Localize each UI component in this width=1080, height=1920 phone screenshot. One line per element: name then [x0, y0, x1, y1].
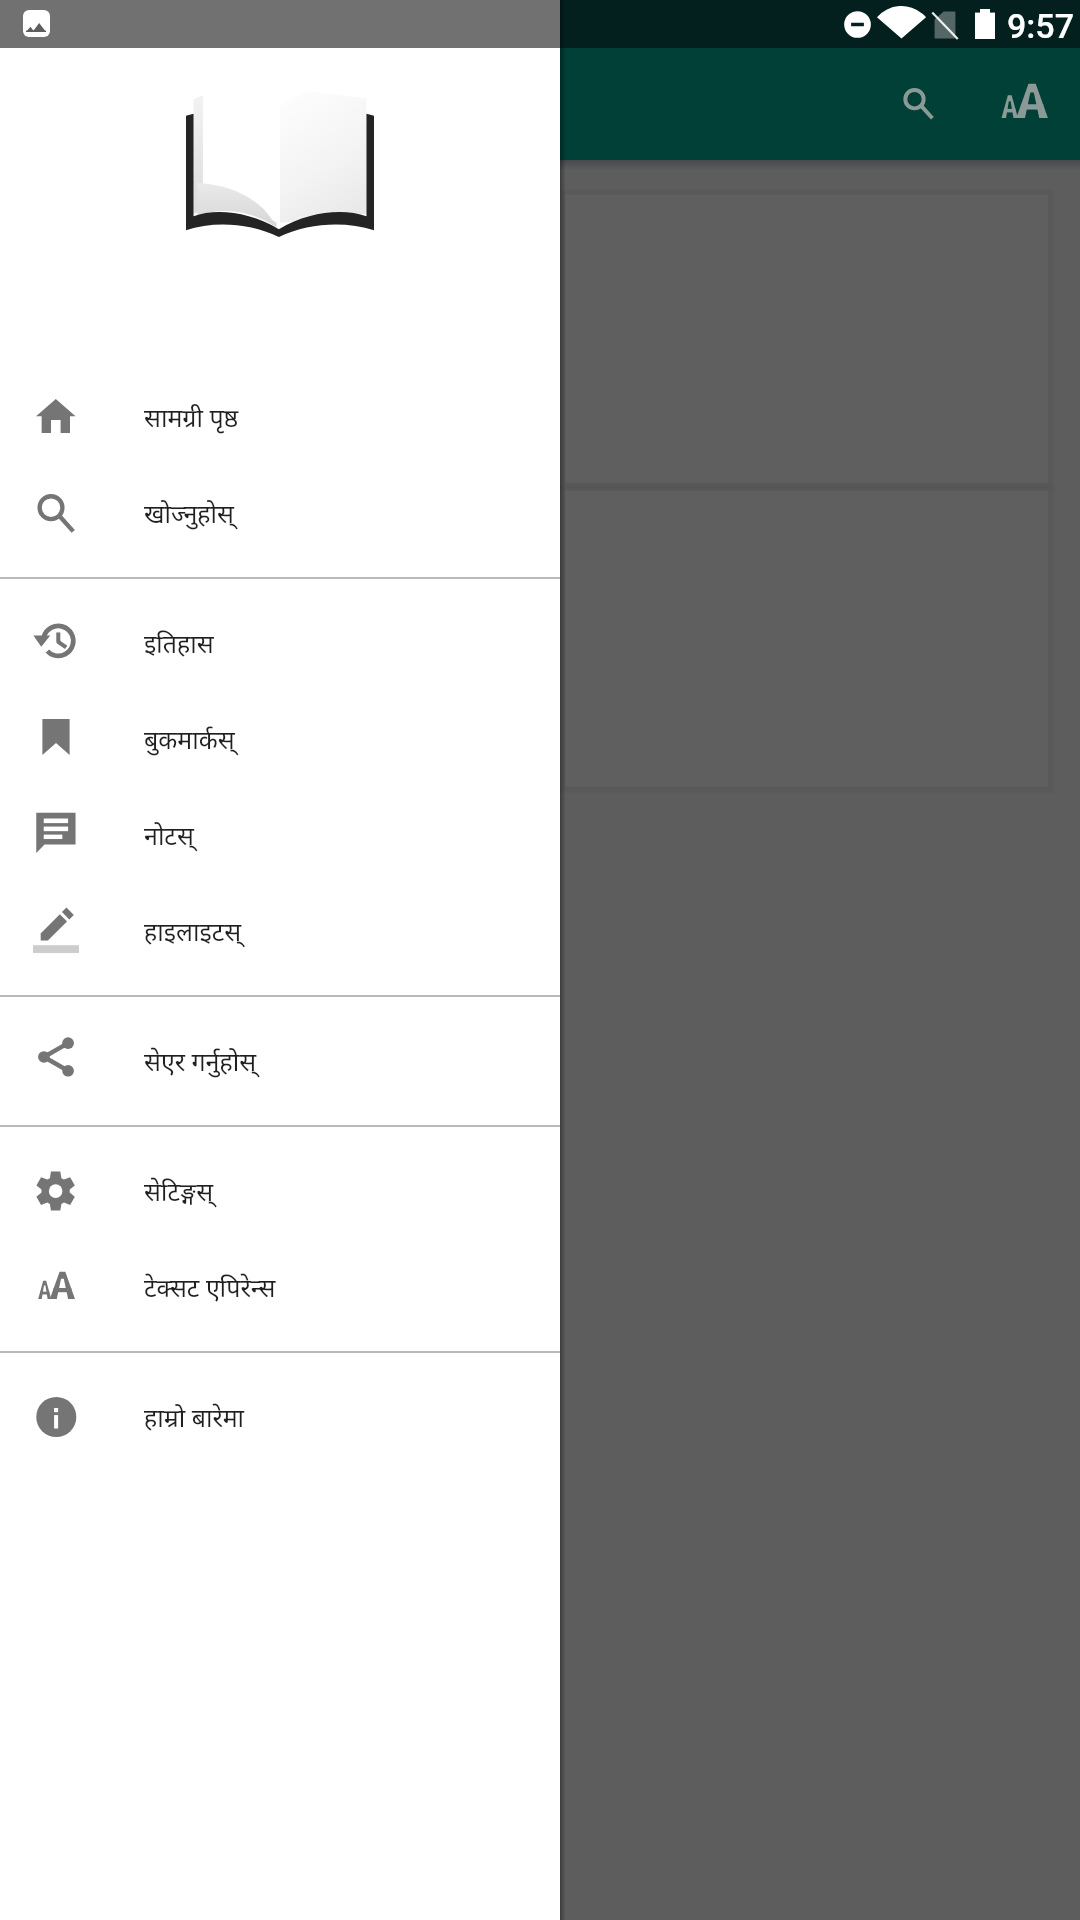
- button[interactable]: टेक्सट एपिरेन्स: [0, 1239, 560, 1335]
- button[interactable]: इतिहास: [0, 595, 560, 691]
- staticText: 9:57: [1007, 6, 1074, 46]
- button[interactable]: खोज्नुहोस्: [0, 465, 560, 561]
- staticText: टेक्सट एपिरेन्स: [144, 1270, 276, 1304]
- staticText: बुकमार्कस्: [144, 722, 235, 756]
- button[interactable]: सेटिङ्गस्: [0, 1143, 560, 1239]
- staticText: हाम्रो बारेमा: [144, 1400, 245, 1434]
- button[interactable]: हाइलाइटस्: [0, 883, 560, 979]
- staticText: सेटिङ्गस्: [144, 1174, 214, 1208]
- staticText: इतिहास: [144, 626, 214, 660]
- staticText: हाइलाइटस्: [144, 914, 242, 948]
- button[interactable]: हाम्रो बारेमा: [0, 1369, 560, 1465]
- staticText: खोज्नुहोस्: [144, 496, 234, 530]
- button[interactable]: Text appearance: [974, 56, 1070, 152]
- button[interactable]: Search: [864, 56, 960, 152]
- staticText: सेएर गर्नुहोस्: [144, 1044, 257, 1078]
- staticText: नोटस्: [144, 818, 194, 852]
- button[interactable]: नोटस्: [0, 787, 560, 883]
- button[interactable]: बुकमार्कस्: [0, 691, 560, 787]
- staticText: सामग्री पृष्ठ: [144, 400, 239, 434]
- button[interactable]: सेएर गर्नुहोस्: [0, 1013, 560, 1109]
- button[interactable]: सामग्री पृष्ठ: [0, 369, 560, 465]
